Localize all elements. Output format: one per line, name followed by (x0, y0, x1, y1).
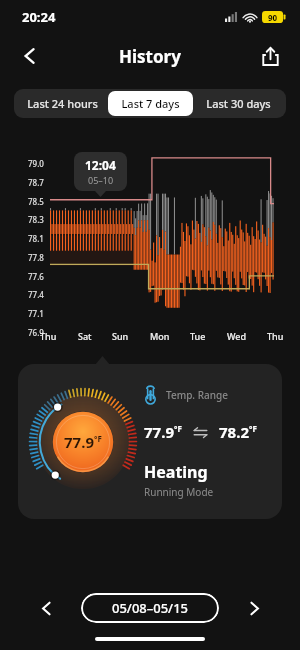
staticText: 90 (268, 12, 278, 23)
button[interactable]: Back (10, 36, 50, 76)
staticText: Heating (144, 461, 208, 483)
staticText: 20:24 (22, 8, 56, 26)
staticText: 77.9 (144, 422, 174, 442)
staticText: °F (174, 423, 182, 434)
staticText: °F (249, 423, 257, 434)
staticText: 12:04 (85, 157, 116, 173)
staticText: Sun (112, 330, 129, 342)
staticText: 77.1 (28, 308, 44, 319)
staticText: 77.9 (64, 432, 94, 452)
staticText: Last 24 hours (27, 96, 98, 111)
staticText: 78.3 (28, 214, 44, 225)
staticText: 77.8 (28, 252, 44, 263)
button[interactable]: Share (250, 36, 290, 76)
staticText: Tue (190, 330, 206, 342)
staticText: 78.5 (28, 196, 44, 207)
button[interactable]: Last 24 hours (16, 91, 108, 116)
button[interactable]: 77.9 (18, 364, 282, 519)
staticText: Sat (78, 330, 92, 342)
staticText: 76.9 (28, 327, 44, 338)
staticText: 78.1 (28, 233, 44, 244)
staticText: 78.7 (28, 177, 44, 188)
staticText: 77.6 (28, 271, 44, 282)
staticText: Last 30 days (206, 96, 271, 111)
button[interactable]: 05/08–05/15 (81, 593, 219, 623)
staticText: 77.4 (28, 289, 44, 300)
button[interactable]: Last 30 days (193, 91, 284, 116)
staticText: Temp. Range (166, 388, 228, 402)
staticText: Thu (40, 330, 57, 342)
staticText: 79.0 (28, 158, 44, 169)
staticText: Running Mode (144, 485, 214, 499)
staticText: Last 7 days (121, 96, 180, 111)
button[interactable]: Last 7 days (108, 91, 193, 116)
staticText: Wed (227, 330, 247, 342)
staticText: Mon (150, 330, 170, 342)
staticText: 78.2 (219, 422, 249, 442)
staticText: 05–10 (88, 174, 114, 186)
staticText: 05/08–05/15 (112, 599, 188, 617)
button[interactable]: Next period (236, 590, 272, 626)
staticText: Thu (267, 330, 284, 342)
staticText: History (119, 45, 181, 68)
staticText: °F (94, 433, 102, 444)
button[interactable]: Previous period (28, 590, 64, 626)
